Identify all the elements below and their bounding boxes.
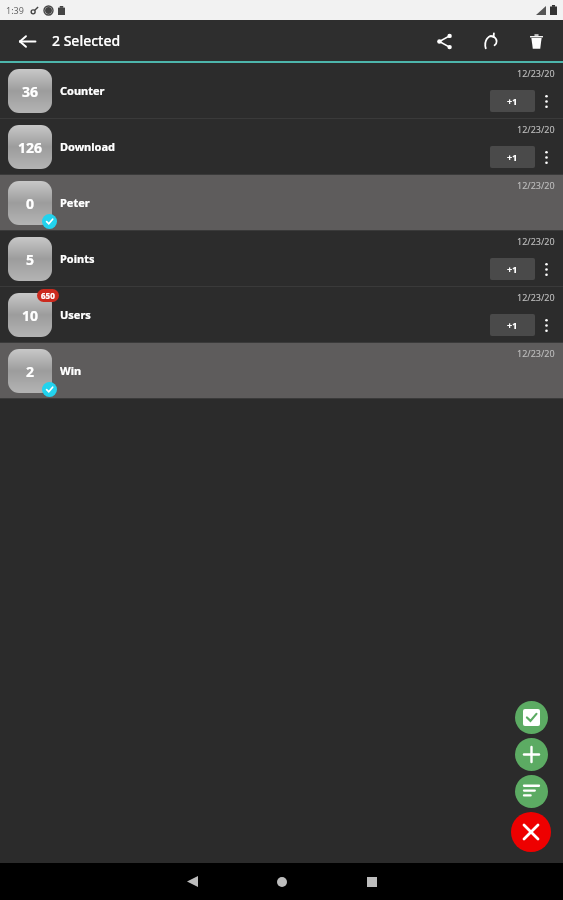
button[interactable]: 2 xyxy=(0,343,563,398)
button[interactable]: 126 xyxy=(0,119,563,174)
button[interactable]: Delete xyxy=(519,24,553,58)
staticText: Users xyxy=(60,307,91,322)
button[interactable]: Sort xyxy=(515,775,548,808)
button[interactable]: More options xyxy=(535,89,557,113)
button[interactable]: +1 xyxy=(490,258,535,280)
staticText: 10 xyxy=(22,306,39,325)
staticText: +1 xyxy=(507,319,518,331)
staticText: Points xyxy=(60,251,95,266)
button[interactable]: More options xyxy=(535,145,557,169)
button[interactable]: Undo xyxy=(473,24,507,58)
staticText: 2 Selected xyxy=(52,31,121,50)
staticText: 12/23/20 xyxy=(517,67,555,79)
button[interactable]: +1 xyxy=(490,314,535,336)
button[interactable]: Back xyxy=(10,24,44,58)
staticText: 12/23/20 xyxy=(517,123,555,135)
staticText: Peter xyxy=(60,195,90,210)
button[interactable]: Back xyxy=(162,863,222,900)
button[interactable]: +1 xyxy=(490,90,535,112)
staticText: Win xyxy=(60,363,82,378)
staticText: +1 xyxy=(507,263,518,275)
staticText: 12/23/20 xyxy=(517,179,555,191)
staticText: 36 xyxy=(22,82,39,101)
staticText: Counter xyxy=(60,83,105,98)
button[interactable]: Close xyxy=(511,812,551,852)
staticText: 12/23/20 xyxy=(517,235,555,247)
button[interactable]: Add xyxy=(515,738,548,771)
staticText: 650 xyxy=(41,290,55,301)
button[interactable]: 36 xyxy=(0,63,563,118)
button[interactable]: +1 xyxy=(490,146,535,168)
button[interactable]: Select all xyxy=(515,701,548,734)
button[interactable]: 0 xyxy=(0,175,563,230)
staticText: 2 xyxy=(26,362,35,381)
staticText: 12/23/20 xyxy=(517,347,555,359)
staticText: Download xyxy=(60,139,115,154)
button[interactable]: Recents xyxy=(342,863,402,900)
button[interactable]: 10 xyxy=(0,287,563,342)
staticText: +1 xyxy=(507,151,518,163)
staticText: 1:39 xyxy=(6,4,24,16)
staticText: 5 xyxy=(26,250,35,269)
button[interactable]: 5 xyxy=(0,231,563,286)
staticText: +1 xyxy=(507,95,518,107)
staticText: 0 xyxy=(26,194,35,213)
button[interactable]: Share xyxy=(427,24,461,58)
staticText: 12/23/20 xyxy=(517,291,555,303)
button[interactable]: More options xyxy=(535,313,557,337)
staticText: 126 xyxy=(18,138,43,157)
button[interactable]: Home xyxy=(252,863,312,900)
button[interactable]: More options xyxy=(535,257,557,281)
